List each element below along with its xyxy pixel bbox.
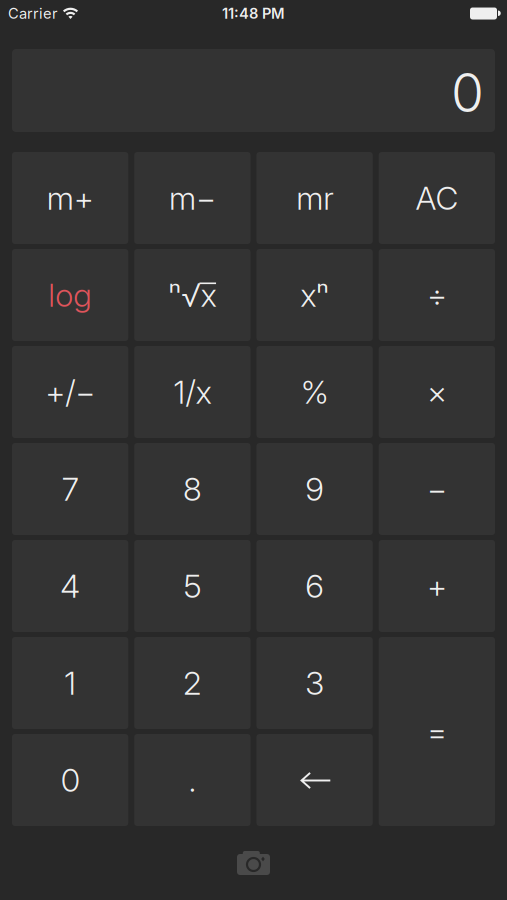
- button[interactable]: log: [12, 249, 128, 341]
- staticText: −: [427, 470, 447, 508]
- button[interactable]: xⁿ: [256, 249, 373, 341]
- staticText: 7: [62, 470, 79, 508]
- button[interactable]: m−: [134, 152, 250, 244]
- staticText: mr: [296, 179, 333, 217]
- button[interactable]: 8: [134, 443, 250, 535]
- button[interactable]: .: [134, 734, 250, 826]
- staticText: ×: [427, 373, 447, 411]
- staticText: AC: [415, 179, 458, 217]
- button[interactable]: 9: [256, 443, 373, 535]
- button[interactable]: Backspace: [256, 734, 373, 826]
- button[interactable]: 0: [12, 734, 128, 826]
- staticText: xⁿ: [300, 276, 329, 314]
- staticText: log: [48, 276, 92, 314]
- button[interactable]: 1/x: [134, 346, 250, 438]
- button[interactable]: ×: [379, 346, 495, 438]
- staticText: 3: [305, 664, 324, 702]
- staticText: 4: [60, 567, 80, 605]
- button[interactable]: 3: [256, 637, 373, 729]
- staticText: +/−: [45, 373, 95, 411]
- staticText: 1/x: [173, 373, 211, 411]
- staticText: ⁿ√x: [168, 276, 216, 314]
- button[interactable]: ⁿ√x: [134, 249, 250, 341]
- staticText: .: [188, 761, 196, 799]
- staticText: 1: [64, 664, 76, 702]
- button[interactable]: =: [379, 637, 495, 826]
- button[interactable]: 7: [12, 443, 128, 535]
- staticText: 0: [451, 60, 484, 125]
- staticText: m+: [47, 179, 94, 217]
- button[interactable]: ÷: [379, 249, 495, 341]
- staticText: 0: [61, 761, 80, 799]
- staticText: ÷: [427, 276, 447, 314]
- button[interactable]: +: [379, 540, 495, 632]
- staticText: 6: [305, 567, 324, 605]
- button[interactable]: 6: [256, 540, 373, 632]
- button[interactable]: 1: [12, 637, 128, 729]
- button[interactable]: %: [256, 346, 373, 438]
- button[interactable]: mr: [256, 152, 373, 244]
- staticText: %: [301, 373, 329, 411]
- button[interactable]: 5: [134, 540, 250, 632]
- button[interactable]: 2: [134, 637, 250, 729]
- staticText: 8: [183, 470, 202, 508]
- staticText: +: [427, 567, 447, 605]
- button[interactable]: m+: [12, 152, 128, 244]
- staticText: Carrier: [8, 5, 58, 22]
- staticText: m−: [169, 179, 216, 217]
- button[interactable]: AC: [379, 152, 495, 244]
- staticText: 11:48 PM: [222, 5, 285, 22]
- staticText: 2: [183, 664, 202, 702]
- staticText: 9: [305, 470, 324, 508]
- button[interactable]: −: [379, 443, 495, 535]
- staticText: =: [427, 712, 447, 751]
- button[interactable]: 4: [12, 540, 128, 632]
- button[interactable]: +/−: [12, 346, 128, 438]
- button[interactable]: Camera: [231, 846, 275, 880]
- staticText: 5: [183, 567, 201, 605]
